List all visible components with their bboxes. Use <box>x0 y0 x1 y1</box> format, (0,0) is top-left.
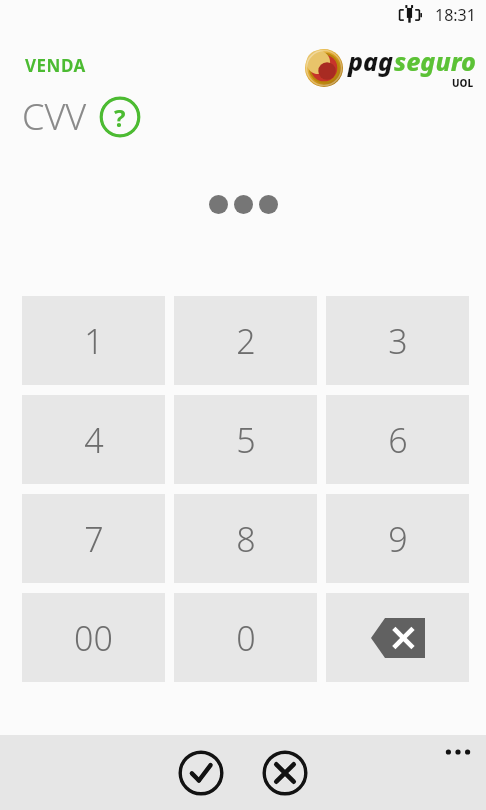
button[interactable]: Ajuda CVV <box>99 96 141 138</box>
button[interactable]: 0 <box>174 593 317 682</box>
button[interactable]: Mais opções <box>430 735 486 769</box>
staticText: 3 <box>388 318 408 364</box>
staticText: 6 <box>388 417 408 463</box>
staticText: 18:31 <box>435 4 476 26</box>
staticText: 5 <box>236 417 256 463</box>
staticText: pag <box>348 44 394 78</box>
button[interactable]: 3 <box>326 296 469 385</box>
staticText: 9 <box>388 516 408 562</box>
button[interactable]: 5 <box>174 395 317 484</box>
button[interactable]: 2 <box>174 296 317 385</box>
staticText: 0 <box>236 615 256 661</box>
button[interactable]: 00 <box>22 593 165 682</box>
staticText: 7 <box>84 516 104 562</box>
staticText: UOL <box>452 76 474 90</box>
button[interactable]: 1 <box>22 296 165 385</box>
button[interactable]: 9 <box>326 494 469 583</box>
button[interactable]: 8 <box>174 494 317 583</box>
button[interactable]: Confirmar <box>175 747 227 799</box>
button[interactable]: 7 <box>22 494 165 583</box>
staticText: VENDA <box>25 54 86 77</box>
staticText: seguro <box>394 44 476 78</box>
staticText: 4 <box>84 417 104 463</box>
staticText: 1 <box>84 318 104 364</box>
staticText: 00 <box>74 615 113 661</box>
staticText: CVV <box>22 92 87 141</box>
button[interactable]: Cancelar <box>259 747 311 799</box>
button[interactable]: Apagar <box>326 593 469 682</box>
staticText: 8 <box>236 516 256 562</box>
staticText: ? <box>114 101 126 134</box>
button[interactable]: 4 <box>22 395 165 484</box>
staticText: 2 <box>236 318 256 364</box>
button[interactable]: 6 <box>326 395 469 484</box>
